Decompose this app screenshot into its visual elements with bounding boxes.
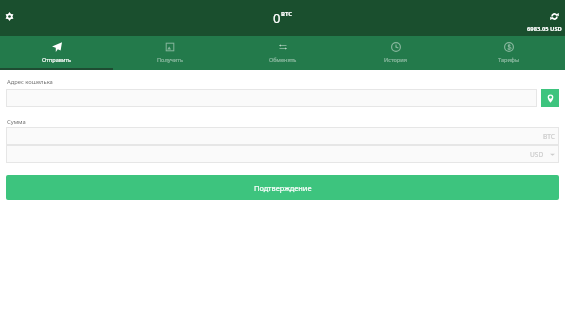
staticText: BTC xyxy=(543,132,555,141)
button[interactable]: Отправить xyxy=(0,36,113,70)
staticText: Сумма xyxy=(7,118,26,126)
staticText: Адрес кошелька xyxy=(7,78,53,86)
staticText: Обменять xyxy=(269,56,297,64)
button[interactable]: Scan QR xyxy=(541,89,559,107)
button[interactable]: Refresh xyxy=(550,12,559,21)
staticText: Отправить xyxy=(42,56,72,64)
button[interactable]: BTC xyxy=(6,127,559,145)
button[interactable]: История xyxy=(339,36,452,70)
button[interactable]: Получить xyxy=(113,36,226,70)
staticText: USD xyxy=(530,150,544,159)
staticText: История xyxy=(384,56,407,64)
button[interactable]: USD xyxy=(6,145,559,163)
button[interactable]: Подтверждение xyxy=(6,175,559,200)
button[interactable]: Адрес кошелька xyxy=(6,89,537,107)
staticText: Подтверждение xyxy=(254,183,312,193)
staticText: BTC xyxy=(281,10,293,18)
staticText: 6983.05 USD xyxy=(527,25,562,33)
staticText: Получить xyxy=(157,56,183,64)
button[interactable]: Тарифы xyxy=(452,36,565,70)
button[interactable]: Settings xyxy=(1,8,18,25)
staticText: 0 xyxy=(273,9,281,27)
button[interactable]: Обменять xyxy=(226,36,339,70)
staticText: Тарифы xyxy=(498,56,520,64)
